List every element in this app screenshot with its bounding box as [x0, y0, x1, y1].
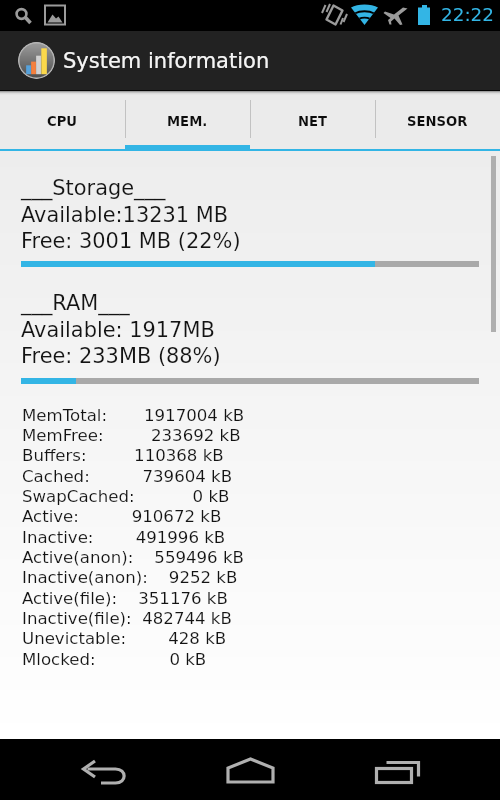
- staticText: SwapCached: 0 kB: [22, 487, 230, 506]
- button[interactable]: Back: [74, 739, 136, 800]
- staticText: 22:22: [441, 4, 494, 25]
- staticText: Buffers: 110368 kB: [22, 446, 224, 465]
- staticText: MEM.: [167, 114, 208, 129]
- staticText: ___Storage___ Available:13231 MB Free: 3…: [21, 176, 241, 253]
- staticText: Active(anon): 559496 kB: [22, 548, 244, 567]
- staticText: Inactive: 491996 kB: [22, 528, 226, 547]
- staticText: ___RAM___ Available: 1917MB Free: 233MB …: [21, 291, 221, 368]
- staticText: Active: 910672 kB: [22, 507, 222, 526]
- staticText: MemTotal: 1917004 kB: [22, 406, 245, 425]
- button[interactable]: Home: [219, 739, 281, 800]
- button[interactable]: Recent apps: [362, 739, 424, 800]
- staticText: CPU: [47, 114, 78, 129]
- button[interactable]: SENSOR: [375, 90, 500, 151]
- button[interactable]: System information: [0, 31, 500, 90]
- staticText: NET: [298, 114, 328, 129]
- button[interactable]: CPU: [0, 90, 125, 151]
- staticText: Unevictable: 428 kB: [22, 629, 227, 648]
- staticText: Active(file): 351176 kB: [22, 589, 228, 608]
- button[interactable]: MEM.: [125, 90, 250, 151]
- button[interactable]: NET: [250, 90, 375, 151]
- staticText: MemFree: 233692 kB: [22, 426, 241, 445]
- staticText: Inactive(anon): 9252 kB: [22, 568, 238, 587]
- staticText: SENSOR: [407, 114, 468, 129]
- staticText: System information: [63, 49, 270, 73]
- staticText: Mlocked: 0 kB: [22, 650, 207, 669]
- staticText: Cached: 739604 kB: [22, 467, 233, 486]
- staticText: Inactive(file): 482744 kB: [22, 609, 232, 628]
